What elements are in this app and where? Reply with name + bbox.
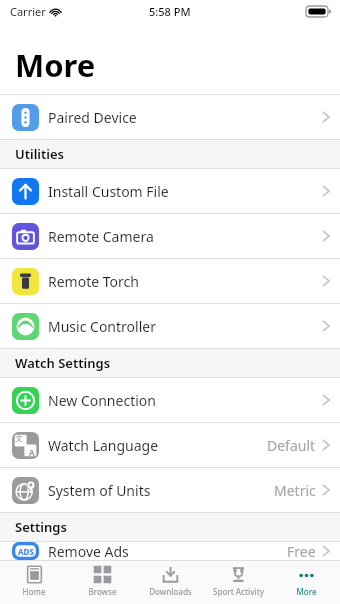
staticText: Settings — [15, 518, 67, 536]
button[interactable]: Sport Activity — [204, 561, 272, 604]
button[interactable]: Browse — [68, 561, 136, 604]
staticText: ADS — [18, 546, 34, 557]
staticText: Carrier — [10, 4, 46, 19]
staticText: 5:58 PM — [149, 4, 191, 19]
staticText: Downloads — [149, 586, 192, 597]
staticText: Watch Language — [48, 436, 159, 455]
staticText: More — [15, 44, 96, 86]
staticText: Remote Torch — [48, 272, 139, 291]
button[interactable]: 文 — [0, 423, 340, 468]
button[interactable]: More — [272, 561, 340, 604]
button[interactable]: Music Controller — [0, 304, 340, 349]
staticText: Free — [287, 542, 316, 560]
staticText: Remote Camera — [48, 227, 154, 246]
staticText: 文 — [15, 433, 23, 443]
staticText: Browse — [88, 586, 117, 597]
button[interactable]: Remote Torch — [0, 259, 340, 304]
button[interactable]: New Connection — [0, 378, 340, 423]
button[interactable]: Paired Device — [0, 95, 340, 140]
button[interactable]: Remote Camera — [0, 214, 340, 259]
button[interactable]: System of Units — [0, 468, 340, 513]
staticText: Install Custom File — [48, 182, 169, 201]
staticText: Music Controller — [48, 317, 156, 336]
staticText: Sport Activity — [213, 586, 264, 597]
button[interactable]: Install Custom File — [0, 169, 340, 214]
button[interactable]: Downloads — [136, 561, 204, 604]
button[interactable]: ADS — [0, 542, 340, 560]
staticText: Paired Device — [48, 108, 137, 127]
button[interactable]: Home — [0, 561, 68, 604]
staticText: Default — [267, 436, 316, 455]
staticText: Remove Ads — [48, 542, 129, 560]
staticText: New Connection — [48, 391, 156, 410]
staticText: A — [29, 447, 35, 458]
staticText: Watch Settings — [15, 354, 111, 372]
staticText: Home — [22, 586, 46, 597]
staticText: System of Units — [48, 481, 151, 500]
staticText: Utilities — [15, 145, 64, 163]
staticText: More — [296, 586, 317, 597]
staticText: Metric — [274, 481, 316, 500]
